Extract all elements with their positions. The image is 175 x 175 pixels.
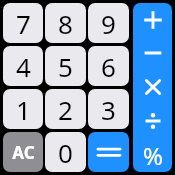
button[interactable]: 1 (3, 89, 43, 129)
staticText: 7 (16, 6, 31, 41)
button[interactable]: 8 (45, 3, 86, 43)
button[interactable]: AC (3, 132, 43, 172)
button[interactable]: Equals (88, 132, 129, 172)
button[interactable]: Divide (133, 104, 172, 138)
staticText: 5 (58, 49, 73, 84)
staticText: 2 (58, 92, 73, 127)
button[interactable]: % (133, 138, 172, 172)
staticText: 9 (101, 6, 116, 41)
button[interactable]: 3 (88, 89, 129, 129)
staticText: % (143, 139, 163, 172)
button[interactable]: Plus (133, 3, 172, 36)
button[interactable]: 6 (88, 46, 129, 86)
button[interactable]: 4 (3, 46, 43, 86)
staticText: 0 (58, 135, 73, 170)
button[interactable]: 7 (3, 3, 43, 43)
button[interactable]: 2 (45, 89, 86, 129)
button[interactable]: Minus (133, 36, 172, 70)
staticText: AC (12, 141, 35, 164)
staticText: 8 (58, 6, 73, 41)
button[interactable]: 0 (45, 132, 86, 172)
button[interactable]: 5 (45, 46, 86, 86)
staticText: 6 (101, 49, 116, 84)
button[interactable]: 9 (88, 3, 129, 43)
staticText: 1 (16, 92, 31, 127)
button[interactable]: Multiply (133, 70, 172, 104)
staticText: 3 (101, 92, 116, 127)
staticText: 4 (16, 49, 31, 84)
